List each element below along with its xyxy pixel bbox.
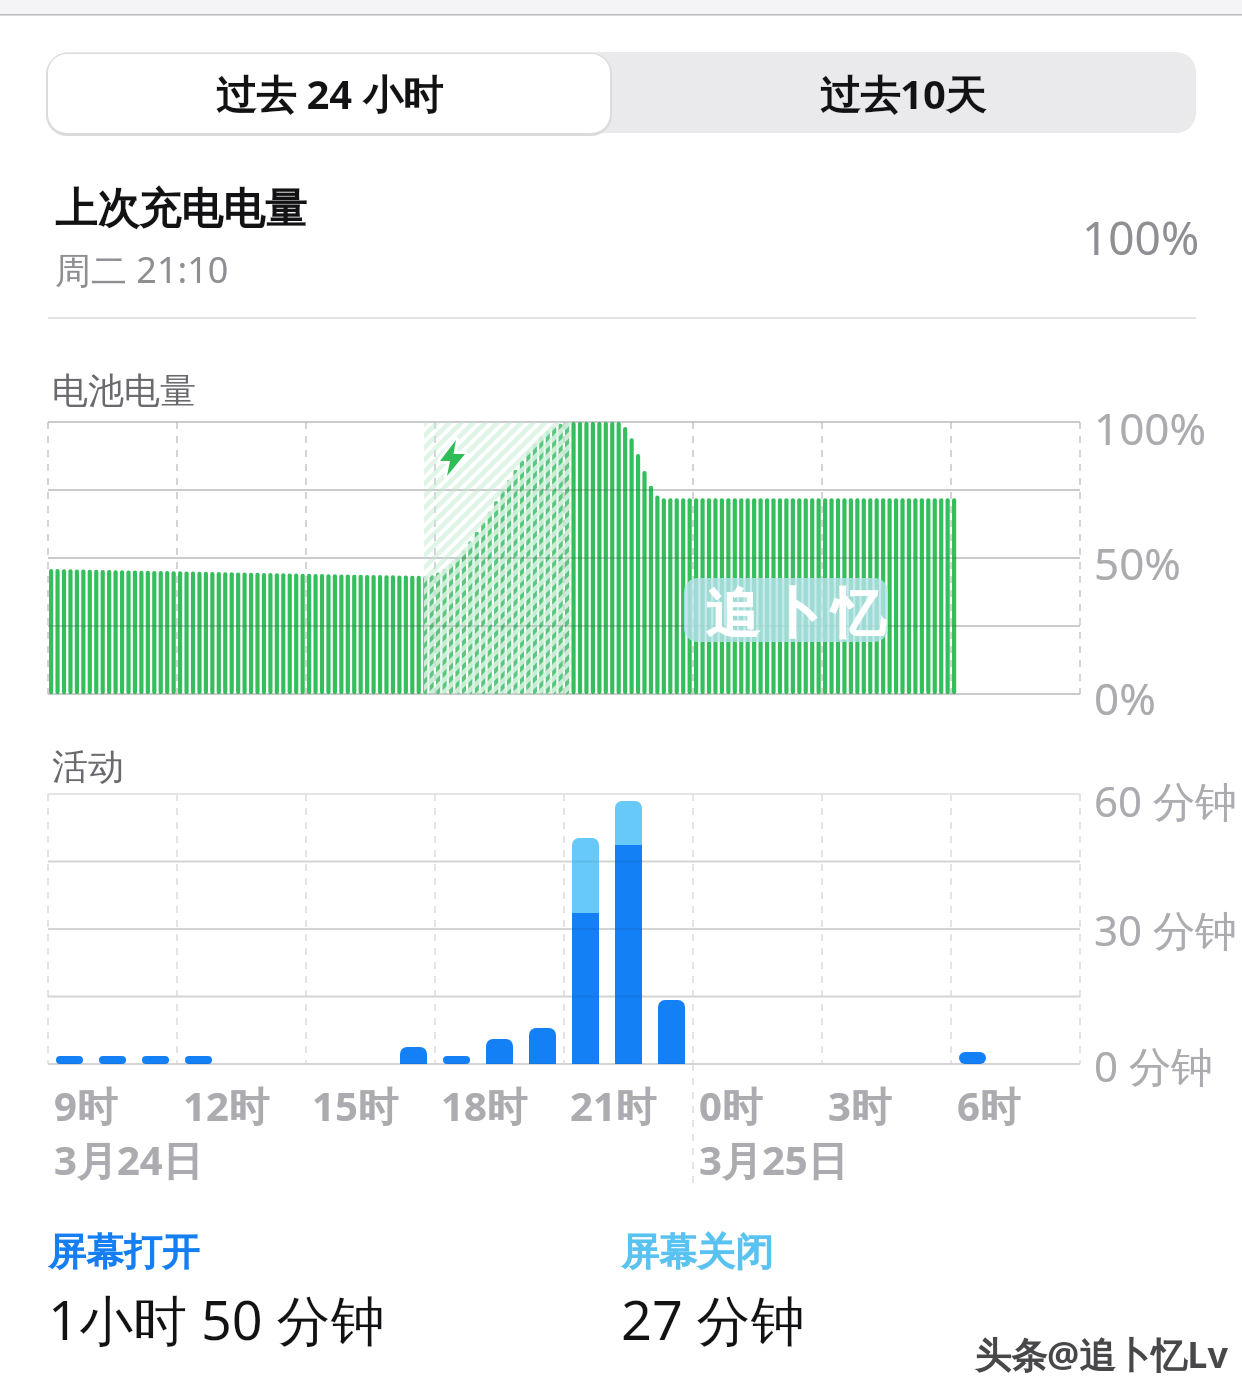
staticText: 9时 bbox=[54, 1078, 117, 1133]
staticText: 27 分钟 bbox=[621, 1282, 805, 1356]
staticText: 过去10天 bbox=[820, 66, 986, 121]
staticText: 过去 24 小时 bbox=[216, 66, 443, 121]
staticText: 3时 bbox=[828, 1078, 891, 1133]
staticText: 100% bbox=[1082, 206, 1200, 269]
staticText: 活动 bbox=[52, 744, 124, 789]
staticText: 屏幕打开 bbox=[48, 1228, 200, 1276]
staticText: 18时 bbox=[441, 1078, 527, 1133]
staticText: 3月25日 bbox=[699, 1132, 848, 1187]
staticText: 60 分钟 bbox=[1094, 772, 1237, 829]
staticText: 屏幕关闭 bbox=[621, 1228, 773, 1276]
staticText: 0% bbox=[1094, 668, 1156, 728]
staticText: 6时 bbox=[957, 1078, 1020, 1133]
staticText: 30 分钟 bbox=[1094, 901, 1237, 958]
staticText: 上次充电电量 bbox=[55, 183, 307, 236]
staticText: 周二 21:10 bbox=[55, 245, 229, 294]
staticText: 3月24日 bbox=[54, 1132, 203, 1187]
staticText: 0 分钟 bbox=[1094, 1037, 1213, 1094]
staticText: 21时 bbox=[570, 1078, 656, 1133]
button[interactable]: 过去10天 bbox=[610, 54, 1196, 133]
staticText: 15时 bbox=[312, 1078, 398, 1133]
staticText: 12时 bbox=[183, 1078, 269, 1133]
staticText: 1小时 50 分钟 bbox=[48, 1282, 385, 1356]
button[interactable]: 屏幕打开 bbox=[48, 1228, 200, 1276]
button[interactable]: 屏幕关闭 bbox=[621, 1228, 773, 1276]
staticText: 0时 bbox=[699, 1078, 762, 1133]
button[interactable]: 过去 24 小时 bbox=[48, 54, 610, 133]
staticText: 50% bbox=[1094, 533, 1181, 593]
staticText: 追卜忆 bbox=[701, 580, 890, 648]
staticText: 头条@追卜忆Lv bbox=[975, 1330, 1229, 1379]
staticText: 电池电量 bbox=[52, 368, 196, 413]
staticText: 100% bbox=[1094, 398, 1207, 458]
